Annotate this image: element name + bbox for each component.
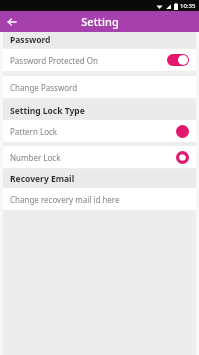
staticText: Number Lock [10,152,176,163]
staticText: Setting [81,14,119,29]
staticText: Change recovery mail id here [10,194,120,205]
staticText: Password [10,34,51,46]
staticText: Setting Lock Type [10,105,85,117]
button[interactable]: Password Protected On [3,49,196,71]
button[interactable]: Change Password [3,76,196,98]
staticText: Password Protected On [10,55,167,66]
button[interactable]: Back [4,14,20,30]
button[interactable]: Number Lock [3,146,196,168]
button[interactable]: Change recovery mail id here [3,188,196,210]
staticText: Recovery Email [10,173,75,185]
staticText: 10:35 [180,2,196,10]
staticText: Change Password [10,82,78,93]
button[interactable]: Pattern Lock [3,120,196,142]
staticText: Pattern Lock [10,126,176,137]
